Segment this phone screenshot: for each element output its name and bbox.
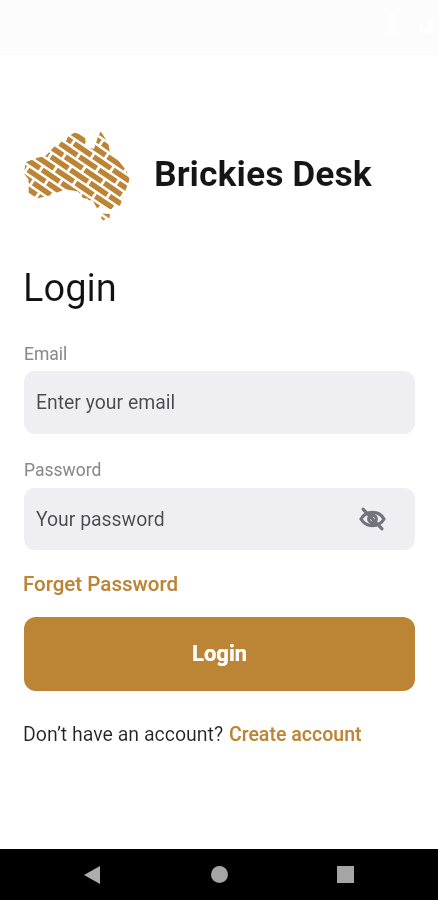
staticText: Forget Password: [23, 572, 179, 596]
staticText: Password: [24, 460, 102, 481]
staticText: Login: [23, 266, 117, 311]
button[interactable]: Create account: [229, 723, 362, 746]
button[interactable]: Enter your email: [24, 371, 415, 434]
button[interactable]: Show password: [354, 501, 390, 537]
staticText: Email: [24, 344, 68, 365]
staticText: Create account: [229, 723, 362, 746]
staticText: Login: [192, 641, 248, 667]
button[interactable]: Recent apps: [303, 849, 388, 900]
staticText: Brickies Desk: [154, 153, 372, 195]
button[interactable]: Forget Password: [23, 572, 179, 596]
button[interactable]: Login: [24, 617, 415, 691]
button[interactable]: Your password: [24, 488, 415, 550]
staticText: Don’t have an account?: [23, 723, 229, 746]
staticText: Your password: [36, 508, 165, 531]
staticText: Enter your email: [36, 391, 176, 414]
button[interactable]: Back: [49, 849, 134, 900]
button[interactable]: Home: [177, 849, 262, 900]
